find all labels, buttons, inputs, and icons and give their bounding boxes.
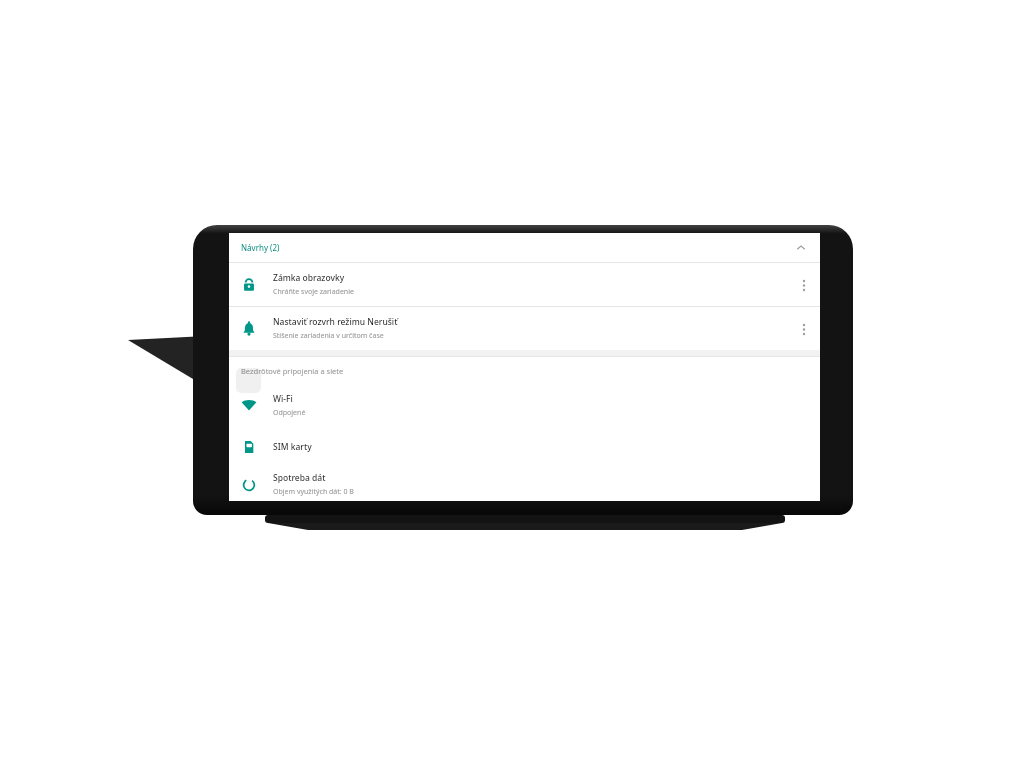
- staticText: Zámka obrazovky: [273, 272, 345, 284]
- staticText: Stíšenie zariadenia v určitom čase: [273, 331, 384, 341]
- staticText: Bezdrôtové pripojenia a siete: [241, 366, 344, 376]
- button[interactable]: Návrhy (2): [229, 233, 820, 262]
- button[interactable]: Ďalšie možnosti: [794, 313, 814, 345]
- button[interactable]: Ďalšie možnosti: [794, 269, 814, 301]
- staticText: Objem využitých dát: 0 B: [273, 487, 354, 497]
- button[interactable]: Zámka obrazovky: [229, 263, 820, 306]
- staticText: Návrhy (2): [241, 242, 280, 253]
- staticText: Spotreba dát: [273, 472, 326, 484]
- button[interactable]: Nastaviť rozvrh režimu Nerušiť: [229, 307, 820, 350]
- staticText: Chráňte svoje zariadenie: [273, 287, 354, 297]
- button[interactable]: Wi-Fi: [229, 384, 820, 426]
- button[interactable]: Zbaliť návrhy: [792, 239, 810, 257]
- staticText: Nastaviť rozvrh režimu Nerušiť: [273, 316, 398, 328]
- button[interactable]: Spotreba dát: [229, 468, 820, 501]
- button[interactable]: SIM karty: [229, 426, 820, 468]
- staticText: Wi-Fi: [273, 393, 293, 405]
- staticText: SIM karty: [273, 441, 312, 453]
- staticText: Odpojené: [273, 408, 306, 418]
